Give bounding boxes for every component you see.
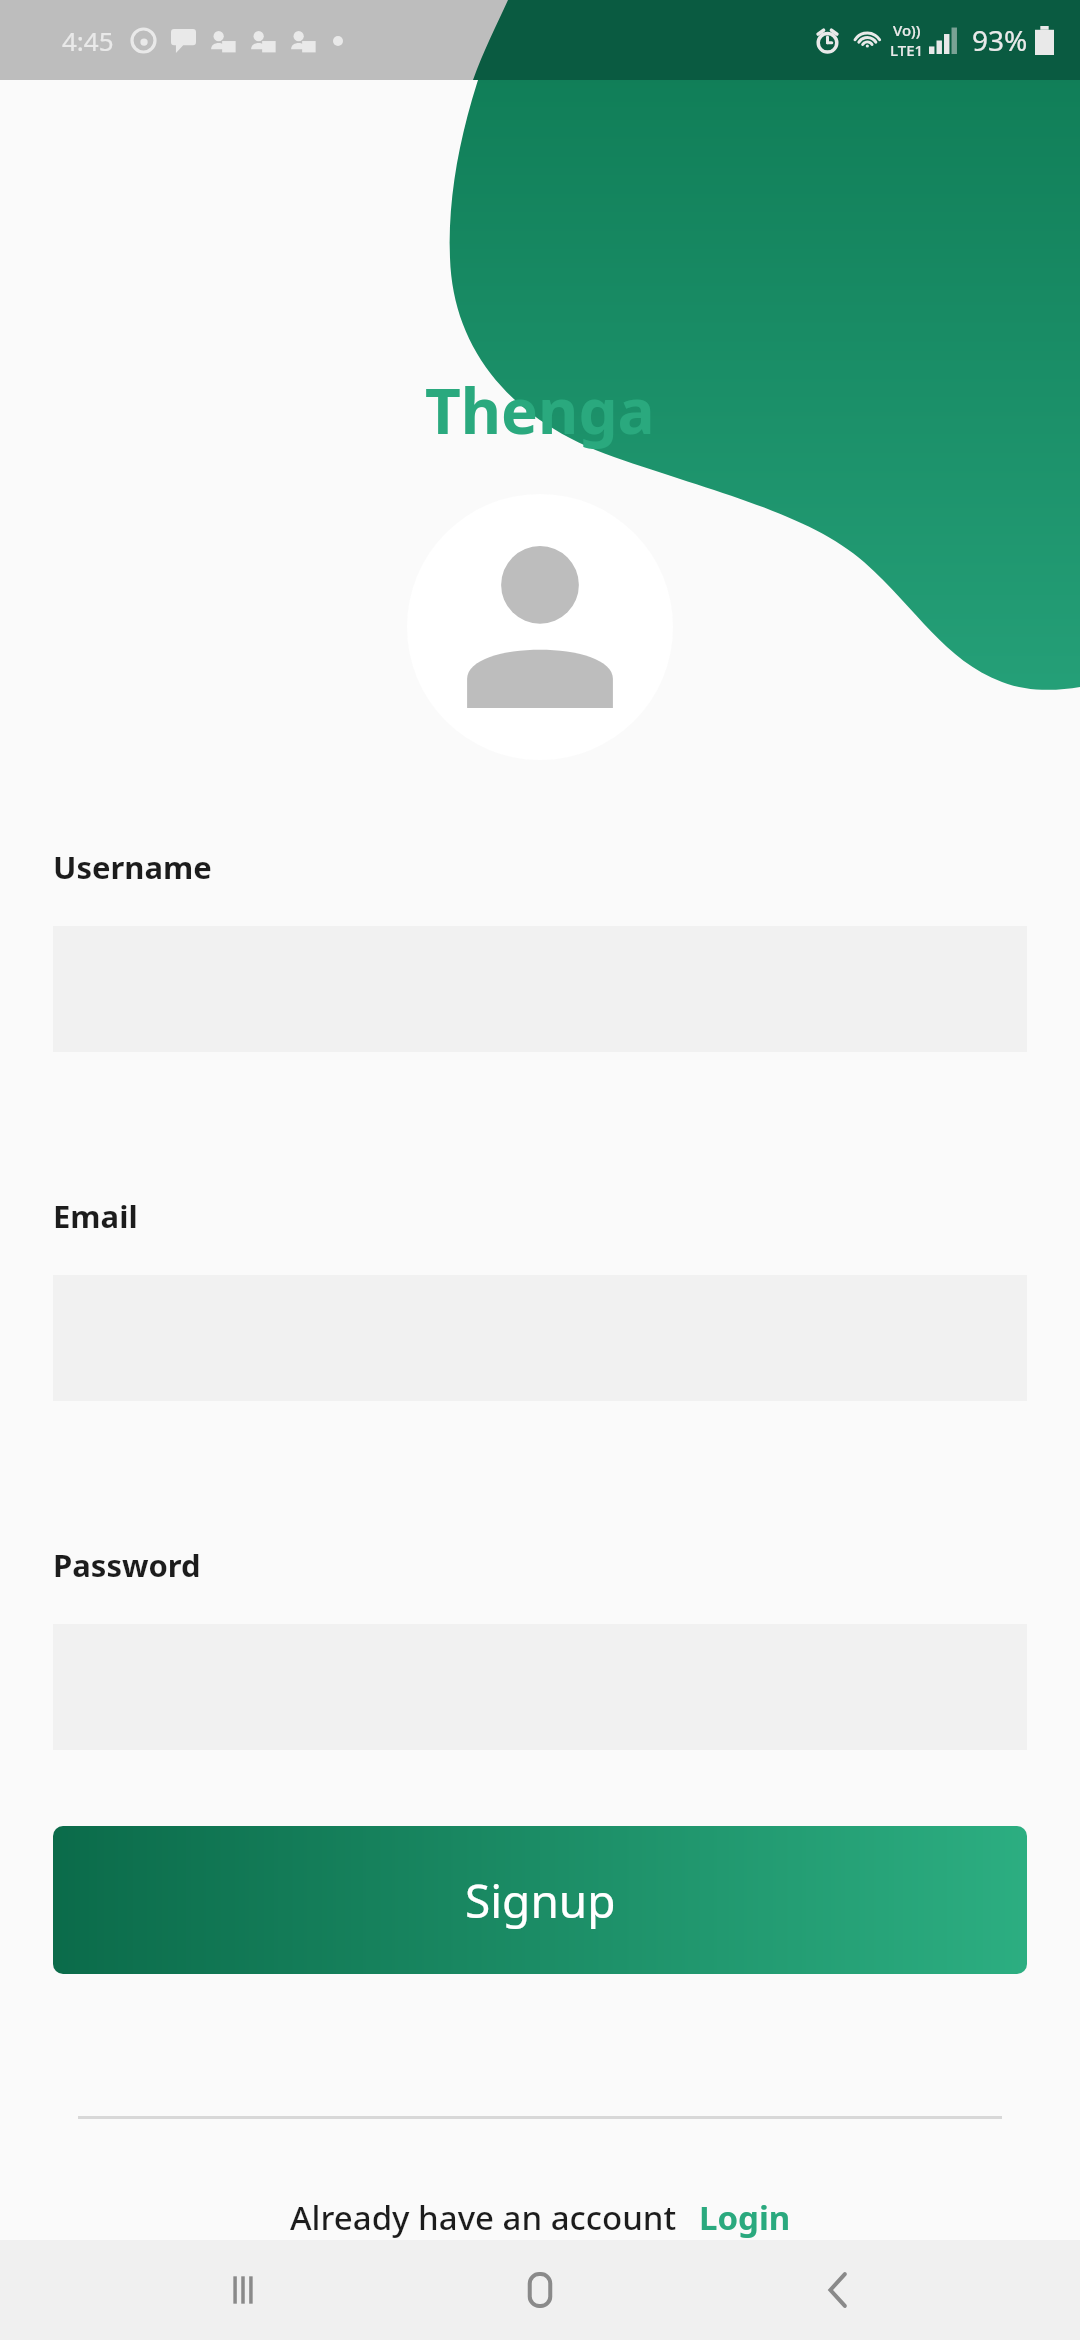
staticText: Password	[53, 1544, 201, 1586]
button[interactable]: Recent apps	[188, 2240, 298, 2340]
staticText: Already have an account	[290, 2195, 677, 2240]
staticText: Vo))	[893, 20, 921, 40]
staticText: LTE1	[890, 40, 924, 60]
staticText: Email	[53, 1195, 138, 1237]
button[interactable]: Back	[783, 2240, 893, 2340]
staticText: 4:45	[62, 23, 114, 58]
staticText: Login	[699, 2195, 791, 2240]
button[interactable]: Login	[699, 2195, 791, 2240]
staticText: Signup	[465, 1869, 616, 1932]
button[interactable]: Signup	[53, 1826, 1027, 1974]
staticText: Username	[53, 846, 212, 888]
button[interactable]: Home	[485, 2240, 595, 2340]
staticText: 93%	[972, 21, 1028, 59]
button[interactable]: Profile photo	[407, 494, 673, 760]
staticText: Thenga	[425, 368, 655, 452]
